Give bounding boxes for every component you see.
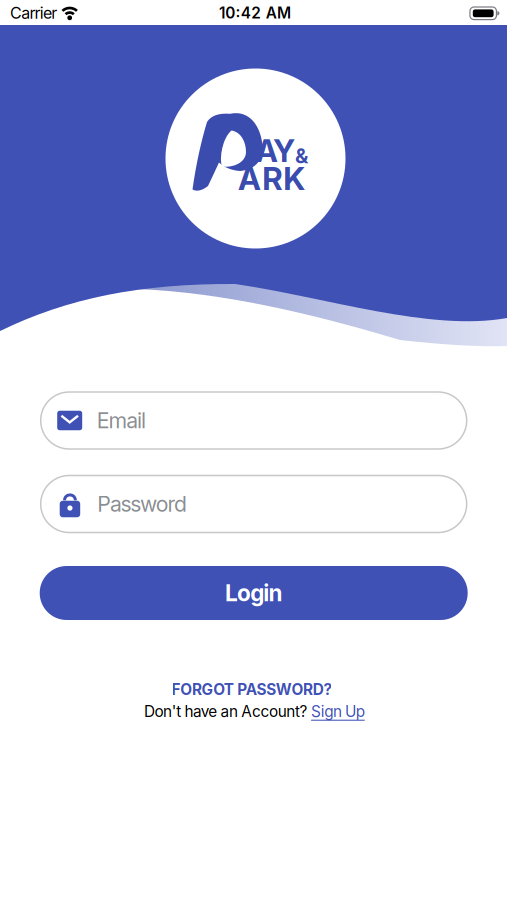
staticText: Login (225, 579, 282, 607)
button[interactable]: Sign Up (311, 702, 365, 721)
button[interactable]: Password (41, 475, 467, 532)
staticText: Carrier (10, 3, 57, 23)
staticText: ARK (238, 160, 305, 197)
staticText: Email (97, 408, 146, 433)
staticText: Password (97, 491, 187, 517)
staticText: Sign Up (311, 702, 365, 721)
staticText: Don't have an Account? (144, 702, 311, 721)
staticText: FORGOT PASSWORD? (172, 680, 332, 699)
button[interactable]: Login (40, 566, 468, 620)
button[interactable]: FORGOT PASSWORD? (172, 680, 332, 699)
button[interactable]: Email (41, 392, 467, 449)
staticText: AY (255, 132, 295, 169)
staticText: & (295, 144, 308, 168)
staticText: 10:42 AM (219, 4, 291, 22)
